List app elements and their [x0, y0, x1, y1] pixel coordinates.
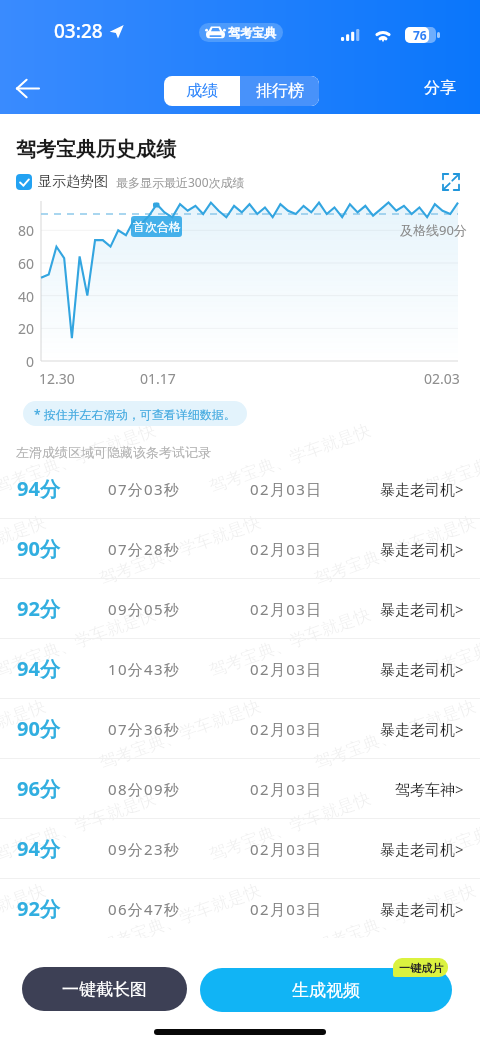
staticText: 驾考宝典、学车就是快: [311, 512, 478, 589]
staticText: 01.17: [140, 369, 176, 388]
staticText: 及格线90分: [400, 221, 467, 239]
staticText: 成绩: [186, 81, 218, 101]
button[interactable]: 分享: [418, 70, 462, 106]
button[interactable]: Back: [6, 67, 48, 109]
staticText: 暴走老司机>: [380, 479, 464, 499]
staticText: 07分03秒: [108, 479, 250, 499]
staticText: 驾考宝典、学车就是快: [206, 972, 373, 1043]
staticText: 显示趋势图: [38, 173, 108, 191]
button[interactable]: 96分: [0, 759, 480, 819]
staticText: 92分: [17, 595, 108, 622]
staticText: 一键截长图: [62, 979, 147, 1000]
staticText: 驾考宝典、学车就是快: [0, 512, 48, 589]
staticText: 驾考宝典、学车就是快: [96, 696, 263, 773]
staticText: 驾考宝典、学车就是快: [206, 420, 373, 497]
staticText: 驾考宝典、学车就是快: [421, 420, 480, 497]
staticText: 09分23秒: [108, 839, 250, 859]
staticText: 驾考宝典: [228, 25, 276, 40]
staticText: 驾考宝典、学车就是快: [206, 788, 373, 865]
staticText: 02月03日: [250, 599, 323, 619]
staticText: 驾考宝典历史成绩: [16, 137, 176, 162]
button[interactable]: 94分: [0, 819, 480, 879]
staticText: 驾考宝典、学车就是快: [421, 788, 480, 865]
staticText: 左滑成绩区域可隐藏该条考试记录: [16, 444, 211, 460]
button[interactable]: Show trend chart: [16, 174, 32, 190]
button[interactable]: Fullscreen: [443, 174, 459, 190]
staticText: 排行榜: [256, 81, 304, 101]
staticText: 02月03日: [250, 779, 323, 799]
staticText: 暴走老司机>: [380, 899, 464, 919]
staticText: 09分05秒: [108, 599, 250, 619]
staticText: 暴走老司机>: [380, 659, 464, 679]
staticText: 12.30: [39, 369, 75, 388]
staticText: 10分43秒: [108, 659, 250, 679]
staticText: 94分: [17, 835, 108, 862]
staticText: 96分: [17, 775, 108, 802]
staticText: 07分36秒: [108, 719, 250, 739]
button[interactable]: 90分: [0, 519, 480, 579]
staticText: 暴走老司机>: [380, 599, 464, 619]
staticText: 暴走老司机>: [380, 839, 464, 859]
staticText: 生成视频: [292, 980, 360, 1001]
staticText: 暴走老司机>: [380, 719, 464, 739]
staticText: 分享: [424, 78, 456, 98]
staticText: 94分: [17, 655, 108, 682]
staticText: 02月03日: [250, 659, 323, 679]
staticText: 0: [26, 352, 35, 371]
button[interactable]: 首次合格: [131, 216, 182, 237]
staticText: 驾考宝典、学车就是快: [421, 972, 480, 1043]
staticText: 03:28: [54, 18, 103, 44]
staticText: 驾考宝典、学车就是快: [0, 696, 48, 773]
button[interactable]: 92分: [0, 579, 480, 639]
button[interactable]: 一键截长图: [22, 967, 187, 1011]
staticText: 一键成片: [399, 961, 443, 975]
staticText: 94分: [17, 475, 108, 502]
staticText: 驾考宝典、学车就是快: [96, 880, 263, 957]
staticText: 驾考宝典、学车就是快: [0, 604, 158, 681]
staticText: 驾考宝典、学车就是快: [0, 880, 48, 957]
staticText: 08分09秒: [108, 779, 250, 799]
staticText: 驾考宝典、学车就是快: [421, 604, 480, 681]
staticText: 驾考宝典、学车就是快: [96, 512, 263, 589]
staticText: 07分28秒: [108, 539, 250, 559]
staticText: 76: [413, 27, 427, 43]
button[interactable]: * 按住并左右滑动，可查看详细数据。: [23, 401, 247, 426]
staticText: 暴走老司机>: [380, 539, 464, 559]
staticText: 最多显示最近300次成绩: [116, 174, 245, 190]
button[interactable]: 成绩: [164, 76, 240, 106]
button[interactable]: 94分: [0, 459, 480, 519]
button[interactable]: 生成视频: [200, 968, 452, 1012]
button[interactable]: 90分: [0, 699, 480, 759]
staticText: 02月03日: [250, 839, 323, 859]
staticText: 驾考宝典、学车就是快: [0, 420, 158, 497]
staticText: 06分47秒: [108, 899, 250, 919]
staticText: * 按住并左右滑动，可查看详细数据。: [34, 406, 236, 422]
staticText: 02月03日: [250, 479, 323, 499]
staticText: 驾考宝典、学车就是快: [0, 788, 158, 865]
staticText: 02.03: [424, 369, 460, 388]
staticText: 驾考宝典、学车就是快: [206, 604, 373, 681]
staticText: 40: [18, 287, 35, 306]
staticText: 02月03日: [250, 899, 323, 919]
staticText: 90分: [17, 715, 108, 742]
staticText: 92分: [17, 895, 108, 922]
staticText: 20: [18, 319, 35, 338]
button[interactable]: 92分: [0, 879, 480, 939]
staticText: 驾考宝典、学车就是快: [311, 880, 478, 957]
staticText: 驾考车神>: [395, 779, 464, 799]
staticText: 驾考宝典、学车就是快: [0, 972, 158, 1043]
staticText: 首次合格: [133, 219, 181, 234]
button[interactable]: 排行榜: [240, 76, 319, 106]
staticText: 02月03日: [250, 539, 323, 559]
staticText: 80: [18, 221, 35, 240]
staticText: 90分: [17, 535, 108, 562]
staticText: 60: [18, 254, 35, 273]
staticText: 驾考宝典、学车就是快: [311, 696, 478, 773]
button[interactable]: 94分: [0, 639, 480, 699]
staticText: 02月03日: [250, 719, 323, 739]
